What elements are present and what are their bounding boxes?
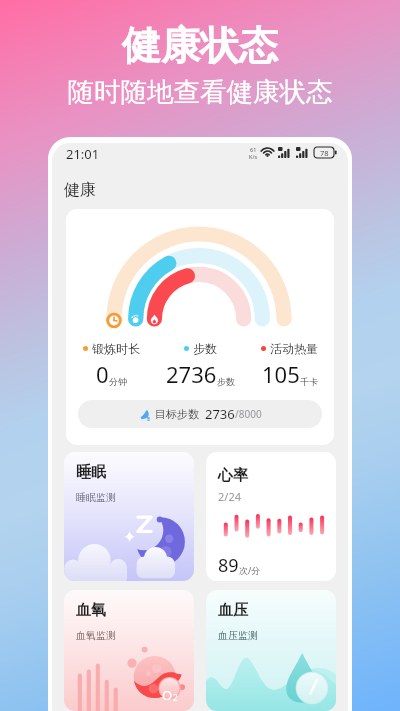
staticText: 步数	[193, 341, 217, 356]
staticText: 锻炼时长	[92, 341, 140, 356]
staticText: 61	[250, 146, 257, 153]
staticText: 21:01	[66, 145, 100, 163]
staticText: 健康	[64, 180, 96, 200]
staticText: 次/分	[239, 564, 261, 576]
button[interactable]: 锻炼时长	[66, 209, 334, 445]
staticText: 78	[320, 148, 329, 158]
staticText: 随时随地查看健康状态	[0, 75, 400, 108]
staticText: 2736	[166, 359, 217, 389]
button[interactable]: 目标步数	[78, 400, 322, 428]
staticText: O	[162, 686, 173, 704]
staticText: 分钟	[109, 376, 127, 387]
staticText: 血压	[218, 601, 248, 620]
staticText: 血氧	[76, 601, 106, 620]
staticText: 89	[218, 553, 239, 578]
staticText: 健康状态	[0, 21, 400, 70]
button[interactable]: 血压	[206, 590, 336, 711]
staticText: 睡眠	[76, 463, 106, 482]
button[interactable]: 睡眠	[64, 452, 194, 581]
staticText: 血氧监测	[76, 629, 116, 642]
staticText: 血压监测	[218, 629, 258, 642]
staticText: 目标步数	[155, 407, 199, 421]
staticText: 2	[173, 692, 178, 703]
staticText: 睡眠监测	[76, 491, 116, 504]
button[interactable]: O	[64, 590, 194, 711]
staticText: 千卡	[300, 376, 318, 387]
staticText: 105	[262, 359, 300, 389]
staticText: K/s	[249, 153, 258, 159]
staticText: /8000	[235, 407, 262, 421]
staticText: 心率	[218, 466, 248, 485]
staticText: 2/24	[218, 489, 241, 504]
staticText: 0	[96, 359, 109, 389]
button[interactable]: 心率	[206, 452, 336, 581]
staticText: 活动热量	[270, 341, 318, 356]
staticText: 步数	[217, 376, 235, 387]
staticText: 2736	[205, 405, 235, 423]
